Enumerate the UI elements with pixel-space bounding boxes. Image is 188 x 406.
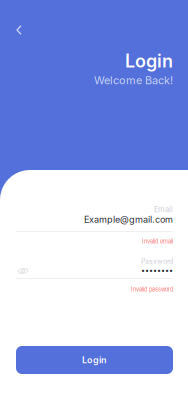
staticText: Login: [82, 354, 107, 365]
button[interactable]: Show password: [14, 264, 32, 278]
staticText: Welcome Back!: [94, 74, 173, 87]
staticText: Email: [154, 205, 173, 214]
button[interactable]: Login: [16, 346, 173, 374]
staticText: Example@gmail.com: [84, 214, 173, 225]
staticText: Invalid email: [142, 238, 173, 245]
staticText: Password: [141, 257, 173, 265]
staticText: Invalid password: [131, 286, 173, 293]
staticText: Login: [125, 50, 173, 72]
button[interactable]: Back: [8, 19, 30, 41]
staticText: ••••••••: [141, 266, 173, 275]
